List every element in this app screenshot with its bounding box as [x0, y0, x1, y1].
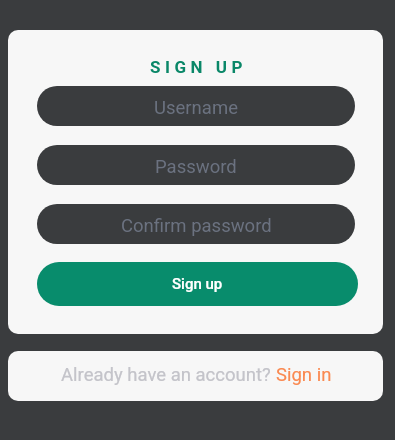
- button[interactable]: Sign in: [276, 364, 332, 386]
- button[interactable]: Password: [37, 145, 355, 185]
- button[interactable]: Already have an account?: [8, 351, 383, 401]
- staticText: Sign up: [172, 275, 223, 293]
- button[interactable]: Confirm password: [37, 204, 355, 244]
- staticText: Already have an account?: [61, 364, 276, 386]
- staticText: Confirm password: [121, 215, 272, 237]
- button[interactable]: Username: [37, 86, 355, 126]
- staticText: Username: [154, 97, 238, 119]
- staticText: Password: [155, 156, 237, 178]
- staticText: SIGN UP: [150, 57, 247, 77]
- button[interactable]: Sign up: [37, 262, 358, 306]
